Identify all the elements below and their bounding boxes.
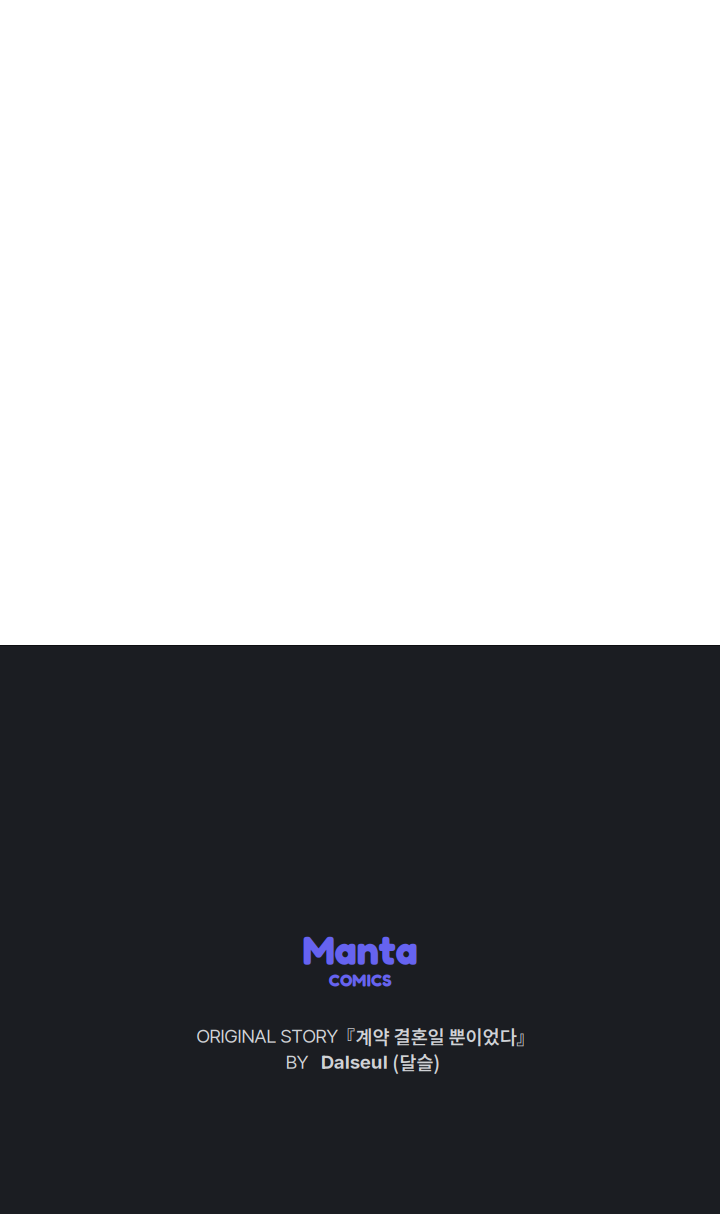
staticText: COMICS — [329, 969, 391, 990]
button[interactable]: Manta Comics — [302, 0, 417, 1214]
staticText: ORIGINAL STORY — [196, 1025, 338, 1047]
staticText: BY — [286, 1051, 309, 1073]
staticText: Dalseul — [321, 1051, 388, 1073]
staticText: 『계약 결혼일 뿐이었다』 — [336, 1022, 535, 1049]
staticText: Manta — [302, 926, 417, 974]
staticText: (달슬) — [392, 1048, 440, 1075]
